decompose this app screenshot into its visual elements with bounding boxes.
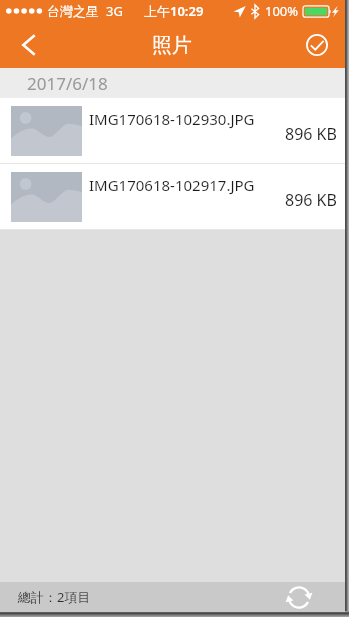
staticText: 上午 (144, 3, 170, 19)
button[interactable]: Refresh (284, 582, 314, 612)
staticText: 10:29 (170, 2, 204, 20)
staticText: 2017/6/18 (27, 72, 108, 95)
button[interactable]: IMG170618-102930.JPG (0, 98, 345, 164)
staticText: 照片 (152, 33, 192, 58)
staticText: 3G (106, 2, 123, 20)
button[interactable]: Back (0, 22, 57, 68)
staticText: IMG170618-102917.JPG (89, 175, 255, 195)
staticText: 100% (265, 2, 299, 20)
staticText: 總計：2項目 (18, 588, 91, 606)
staticText: IMG170618-102930.JPG (89, 109, 255, 129)
button[interactable]: Select all (289, 22, 345, 68)
staticText: 896 KB (285, 189, 337, 211)
staticText: 台灣之星 (47, 3, 99, 19)
staticText: 896 KB (285, 123, 337, 145)
button[interactable]: IMG170618-102917.JPG (0, 164, 345, 230)
